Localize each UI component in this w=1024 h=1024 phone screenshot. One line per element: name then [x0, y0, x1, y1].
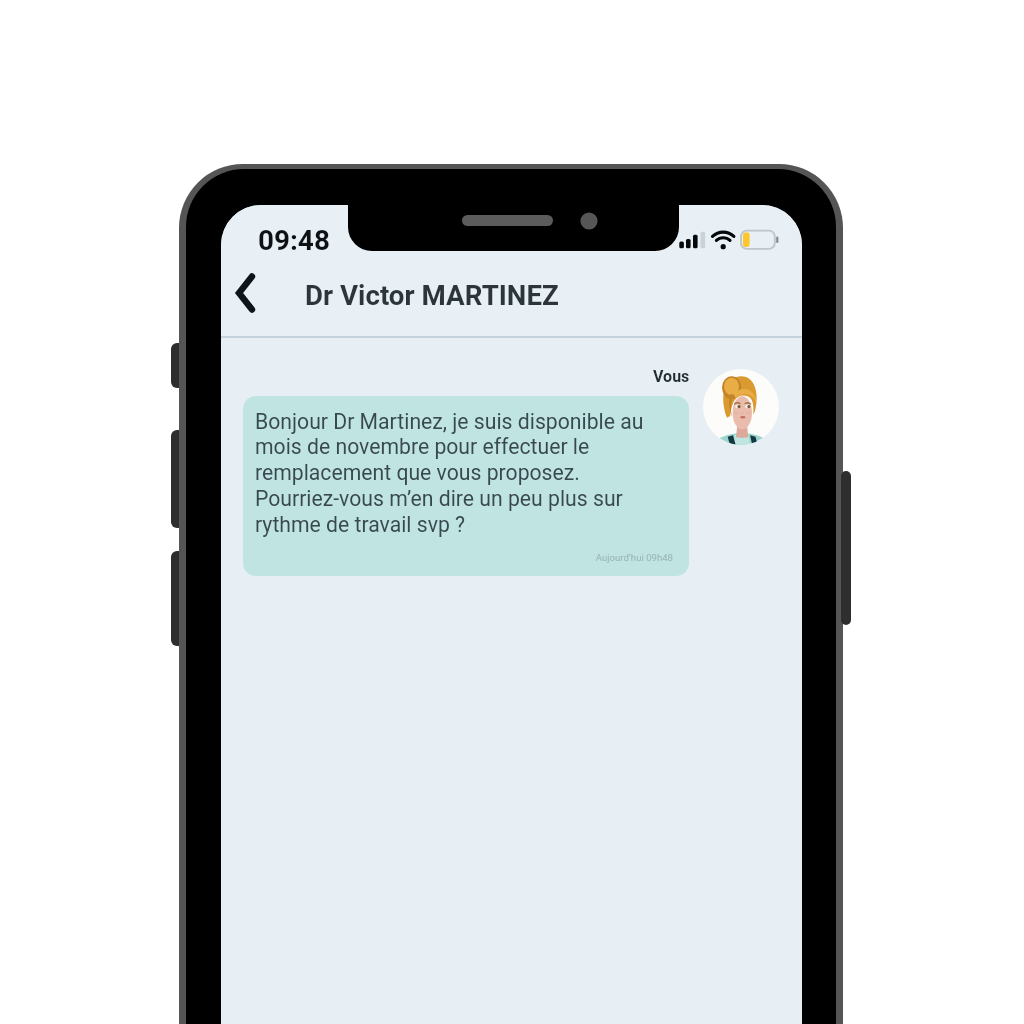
staticText: Vous — [653, 367, 690, 386]
staticText: 09:48 — [258, 224, 330, 257]
staticText: Aujourd’hui 09h48 — [255, 552, 673, 563]
button[interactable]: Dr Victor MARTINEZ — [291, 264, 591, 330]
staticText: Bonjour Dr Martinez, je suis disponible … — [255, 409, 644, 538]
staticText: Dr Victor MARTINEZ — [305, 279, 559, 311]
button[interactable]: Back — [227, 266, 285, 324]
button[interactable]: Bonjour Dr Martinez, je suis disponible … — [243, 396, 689, 576]
button[interactable]: Avatar — [703, 369, 779, 445]
